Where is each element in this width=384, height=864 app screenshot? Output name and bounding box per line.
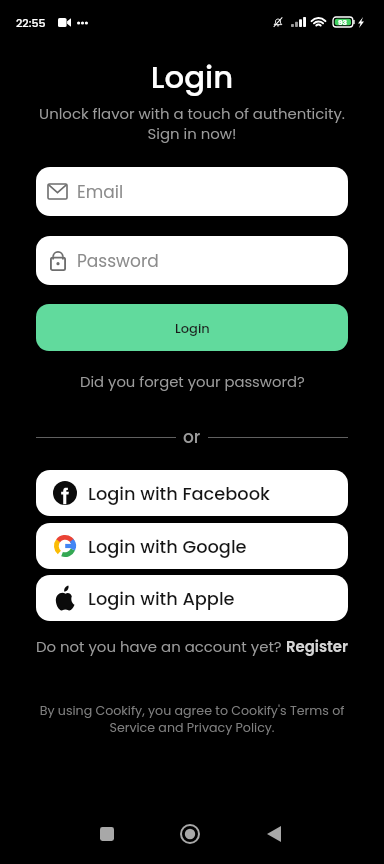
button[interactable]: Register (286, 636, 349, 657)
staticText: Unlock flavor with a touch of authentici… (0, 103, 384, 144)
button[interactable]: Recent apps (83, 810, 130, 857)
staticText: Email (77, 180, 124, 204)
staticText: Password (77, 249, 159, 273)
button[interactable]: Login with Facebook (36, 470, 348, 516)
staticText: Login with Facebook (88, 481, 270, 506)
button[interactable]: Email (36, 167, 348, 216)
button[interactable]: Did you forget your password? (0, 369, 384, 393)
staticText: Login with Apple (88, 586, 235, 611)
staticText: Login (175, 319, 210, 337)
staticText: By using Cookify, you agree to Cookify's… (0, 702, 384, 737)
button[interactable]: Back (250, 810, 297, 857)
button[interactable]: Password (36, 236, 348, 285)
staticText: Register (286, 636, 349, 657)
staticText: Did you forget your password? (80, 371, 305, 392)
staticText: Do not you have an account yet? (36, 636, 286, 657)
button[interactable]: Login (36, 304, 348, 351)
staticText: 93 (338, 17, 348, 27)
button[interactable]: Home (166, 810, 213, 857)
staticText: Login (0, 56, 384, 99)
staticText: 22:55 (16, 15, 46, 30)
staticText: or (183, 425, 201, 449)
staticText: Login with Google (88, 534, 247, 559)
button[interactable]: Login with Google (36, 523, 348, 569)
button[interactable]: Login with Apple (36, 575, 348, 621)
